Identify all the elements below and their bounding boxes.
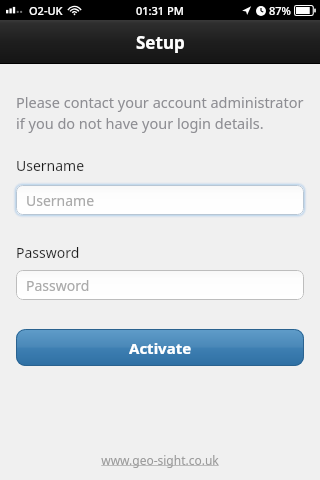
button[interactable]: Activate (16, 329, 304, 366)
staticText: Please contact your account administrato… (16, 92, 304, 134)
staticText: Setup (136, 31, 185, 54)
button[interactable]: Username (16, 185, 304, 215)
staticText: Username (26, 191, 95, 210)
staticText: Username (16, 156, 85, 175)
button[interactable]: www.geo-sight.co.uk (101, 452, 219, 468)
staticText: Activate (129, 338, 192, 358)
staticText: Password (26, 276, 90, 295)
button[interactable]: Password (16, 270, 304, 300)
staticText: 87% (269, 3, 291, 18)
staticText: www.geo-sight.co.uk (101, 452, 219, 468)
staticText: Password (16, 243, 80, 262)
staticText: 01:31 PM (136, 3, 184, 18)
staticText: O2-UK (29, 3, 63, 18)
